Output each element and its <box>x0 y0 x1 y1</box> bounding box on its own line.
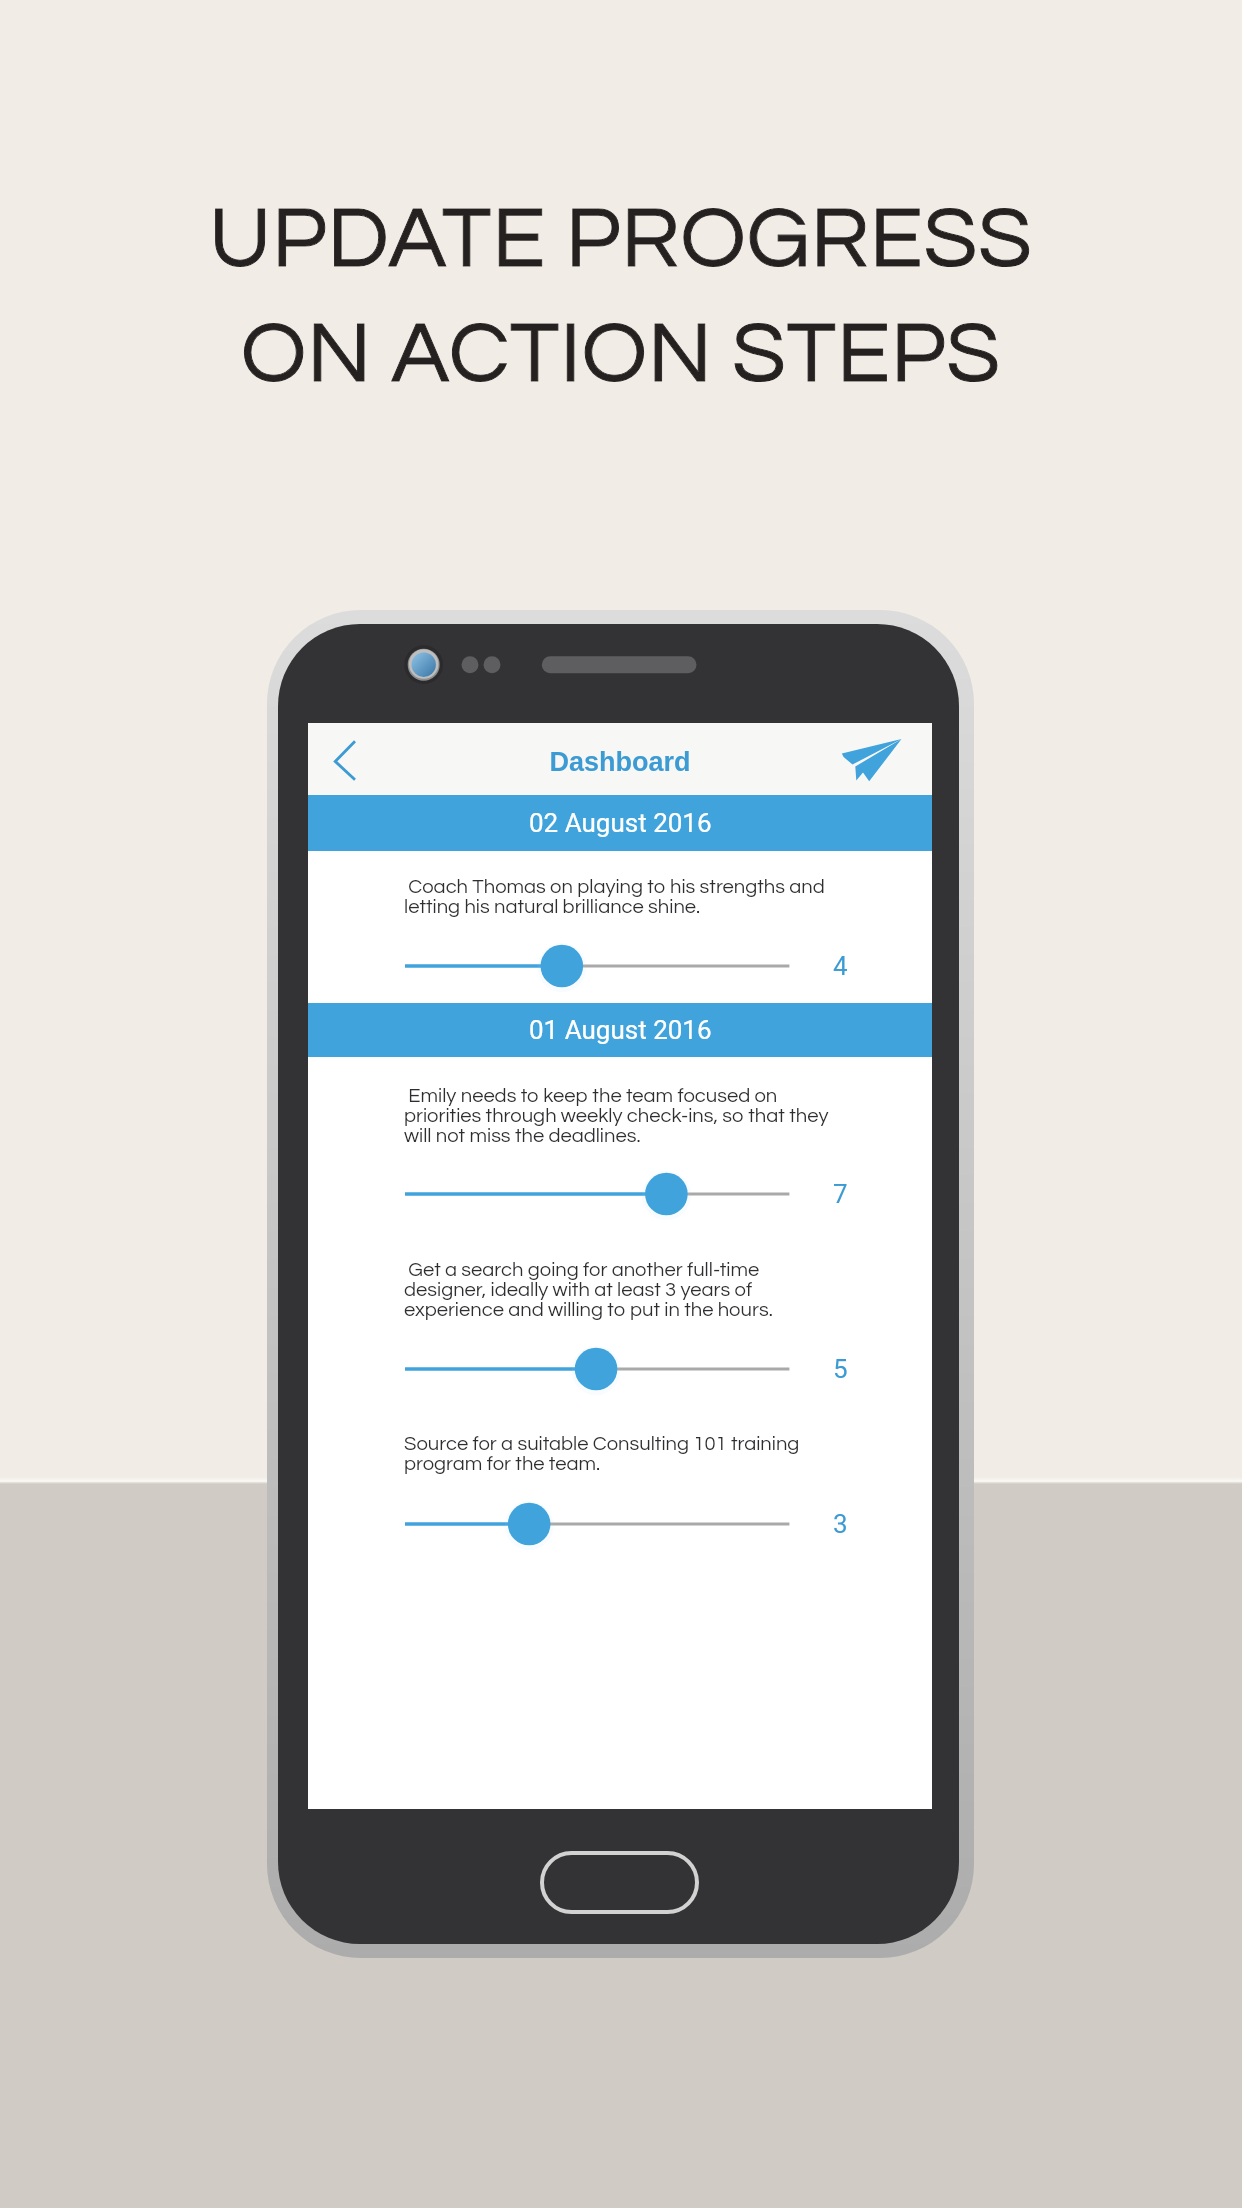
staticText: 01 August 2016 <box>529 1015 712 1045</box>
button[interactable]: Progress 7 <box>381 1164 821 1224</box>
button[interactable]: Back <box>323 731 371 791</box>
button[interactable]: Progress 4 <box>381 936 821 996</box>
staticText: 7 <box>833 1179 848 1209</box>
button[interactable]: Score 7 <box>813 1170 867 1218</box>
staticText: Dashboard <box>308 747 932 777</box>
button[interactable]: Get a search going for another full-time… <box>404 1259 836 1320</box>
button[interactable]: Coach Thomas on playing to his strengths… <box>404 876 836 917</box>
button[interactable]: 01 August 2016 <box>308 1003 932 1057</box>
button[interactable]: Send <box>833 732 909 790</box>
staticText: ON ACTION STEPS <box>0 310 1242 400</box>
staticText: 4 <box>833 951 848 981</box>
staticText: 5 <box>833 1354 848 1384</box>
staticText: 3 <box>833 1509 848 1539</box>
button[interactable]: Score 5 <box>813 1345 867 1393</box>
button[interactable]: Source for a suitable Consulting 101 tra… <box>404 1433 836 1474</box>
button[interactable]: Score 4 <box>813 942 867 990</box>
staticText: UPDATE PROGRESS <box>0 195 1242 285</box>
staticText: ON ACTION STEPS <box>0 310 1242 400</box>
button[interactable]: Emily needs to keep the team focused on … <box>404 1085 836 1146</box>
staticText: 02 August 2016 <box>529 808 712 838</box>
button[interactable]: Score 3 <box>813 1500 867 1548</box>
button[interactable]: Progress 3 <box>381 1494 821 1554</box>
staticText: UPDATE PROGRESS <box>0 195 1242 285</box>
button[interactable]: Progress 5 <box>381 1339 821 1399</box>
button[interactable]: 02 August 2016 <box>308 795 932 851</box>
